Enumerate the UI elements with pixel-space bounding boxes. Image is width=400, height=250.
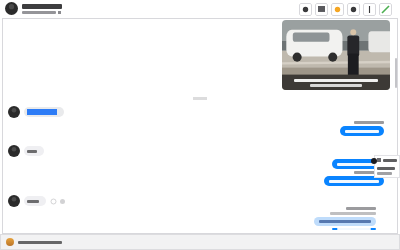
button[interactable] — [6, 238, 62, 246]
button[interactable]: Info — [299, 3, 312, 16]
button[interactable] — [324, 176, 384, 186]
button[interactable] — [314, 217, 376, 226]
button[interactable]: Camera — [347, 3, 360, 16]
button[interactable]: Save — [315, 3, 328, 16]
button[interactable] — [340, 126, 384, 136]
button[interactable] — [332, 159, 384, 169]
button[interactable] — [8, 106, 398, 118]
button[interactable] — [377, 158, 397, 162]
button[interactable] — [8, 195, 398, 207]
button[interactable] — [8, 145, 398, 157]
button[interactable]: Highlight — [331, 3, 344, 16]
button[interactable]: More — [363, 3, 376, 16]
button[interactable]: Photo message — [282, 20, 390, 90]
button[interactable]: Edit — [379, 3, 392, 16]
button[interactable] — [332, 228, 376, 230]
button[interactable] — [5, 2, 62, 15]
